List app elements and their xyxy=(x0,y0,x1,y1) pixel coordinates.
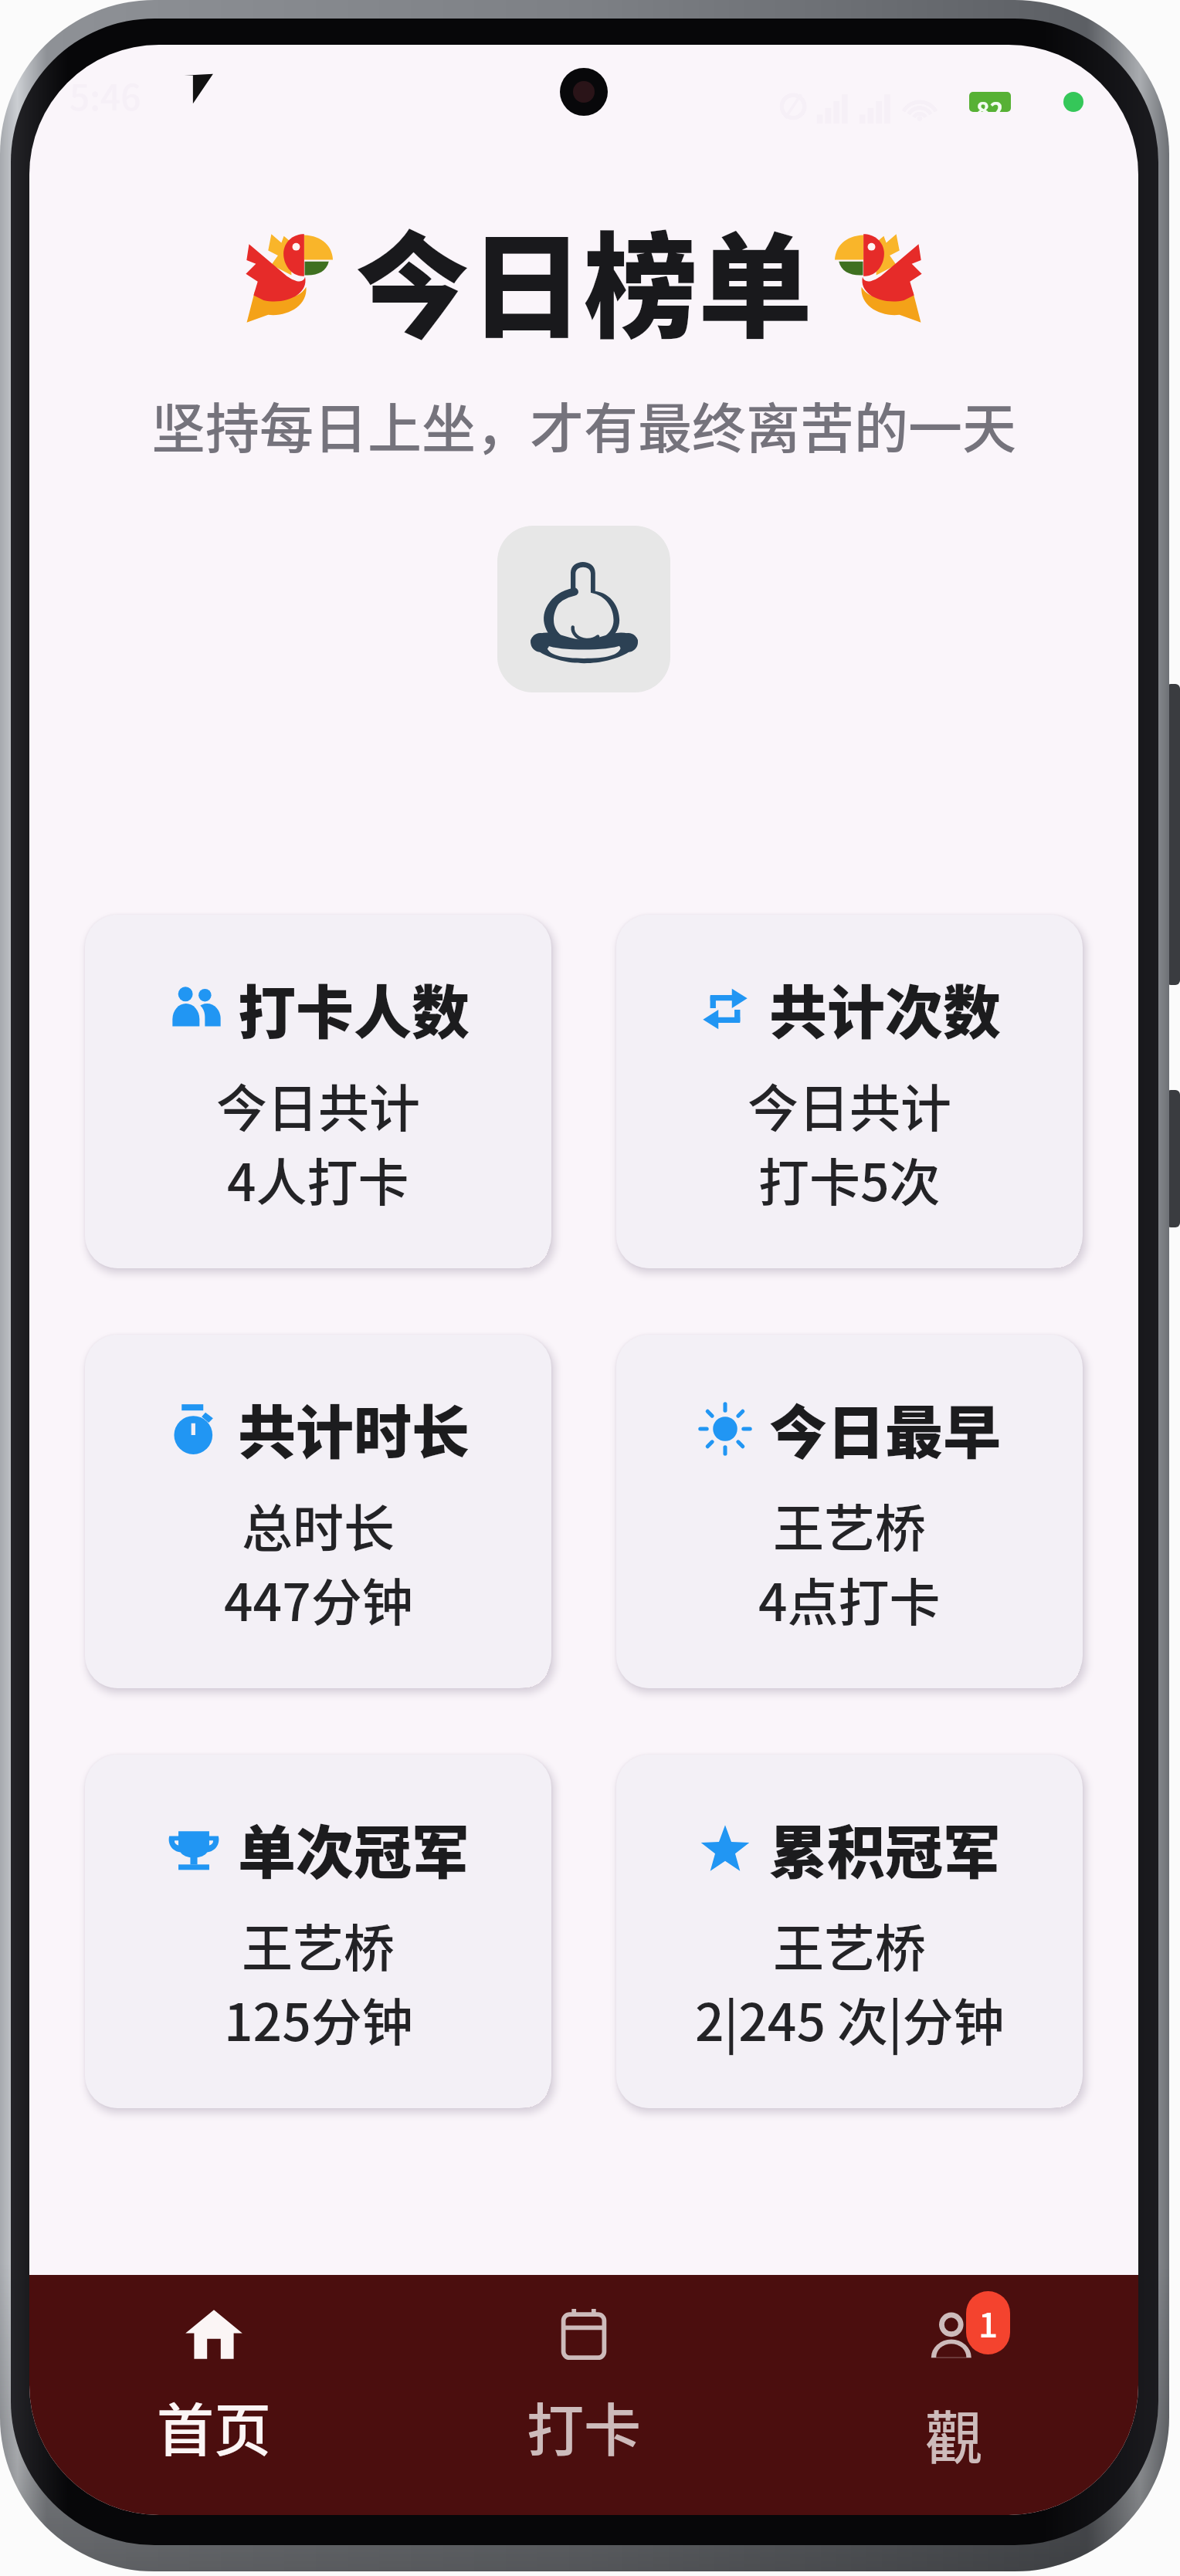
button[interactable]: 共计次数 xyxy=(616,915,1083,1268)
staticText: 单次冠军 xyxy=(238,1806,470,1891)
staticText: 觀 xyxy=(925,2392,982,2475)
staticText: 累积冠军 xyxy=(769,1806,1002,1891)
staticText: 打卡5次 xyxy=(758,1142,941,1216)
staticText: 4人打卡 xyxy=(227,1142,409,1216)
staticText: 今日共计 xyxy=(216,1068,420,1142)
button[interactable]: 今日最早 xyxy=(616,1335,1083,1688)
staticText: 打卡人数 xyxy=(238,966,470,1051)
staticText: 今日最早 xyxy=(769,1386,1002,1471)
staticText: 125分钟 xyxy=(224,1982,413,2056)
staticText: 王艺桥 xyxy=(773,1907,926,1982)
button[interactable]: 累积冠军 xyxy=(616,1755,1083,2108)
staticText: 今日榜单 xyxy=(355,195,812,361)
button[interactable]: 单次冠军 xyxy=(85,1755,551,2108)
staticText: 王艺桥 xyxy=(242,1907,395,1982)
button[interactable]: 打卡 xyxy=(398,2275,768,2515)
staticText: 2|245 次|分钟 xyxy=(695,1982,1005,2056)
staticText: 共计次数 xyxy=(769,966,1002,1051)
staticText: 共计时长 xyxy=(238,1386,470,1471)
button[interactable]: 首页 xyxy=(29,2275,398,2515)
button[interactable]: 打卡人数 xyxy=(85,915,551,1268)
button[interactable]: Meditation xyxy=(497,526,670,692)
staticText: 今日共计 xyxy=(748,1068,951,1142)
staticText: 82 xyxy=(976,92,1004,112)
staticText: 打卡 xyxy=(527,2385,641,2467)
staticText: 总时长 xyxy=(242,1488,395,1562)
staticText: 坚持每日上坐，才有最终离苦的一天 xyxy=(29,386,1138,464)
button[interactable]: 共计时长 xyxy=(85,1335,551,1688)
button[interactable]: 1 xyxy=(768,2275,1138,2515)
staticText: 首页 xyxy=(157,2385,271,2467)
staticText: 王艺桥 xyxy=(773,1488,926,1562)
staticText: 1 xyxy=(978,2298,999,2348)
staticText: 5:46 xyxy=(70,69,141,121)
staticText: 4点打卡 xyxy=(758,1562,941,1636)
staticText: 447分钟 xyxy=(224,1562,413,1636)
